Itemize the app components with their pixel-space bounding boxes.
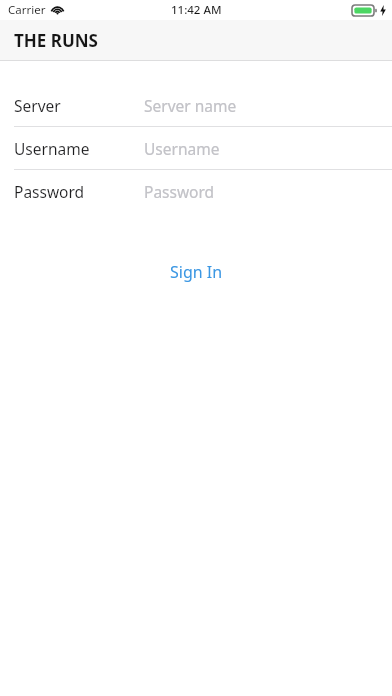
button[interactable]: Server xyxy=(0,84,392,126)
staticText: Sign In xyxy=(170,261,223,283)
button[interactable]: Sign In xyxy=(152,255,241,289)
staticText: 11:42 AM xyxy=(171,2,222,18)
staticText: Server name xyxy=(144,95,237,116)
button[interactable]: Username xyxy=(0,127,392,169)
staticText: Username xyxy=(144,138,220,159)
staticText: Server xyxy=(14,95,61,116)
staticText: Password xyxy=(144,181,215,202)
button[interactable]: Password xyxy=(0,170,392,212)
staticText: Password xyxy=(14,181,85,202)
staticText: THE RUNS xyxy=(14,29,98,52)
staticText: Carrier xyxy=(8,2,46,18)
staticText: Username xyxy=(14,138,90,159)
